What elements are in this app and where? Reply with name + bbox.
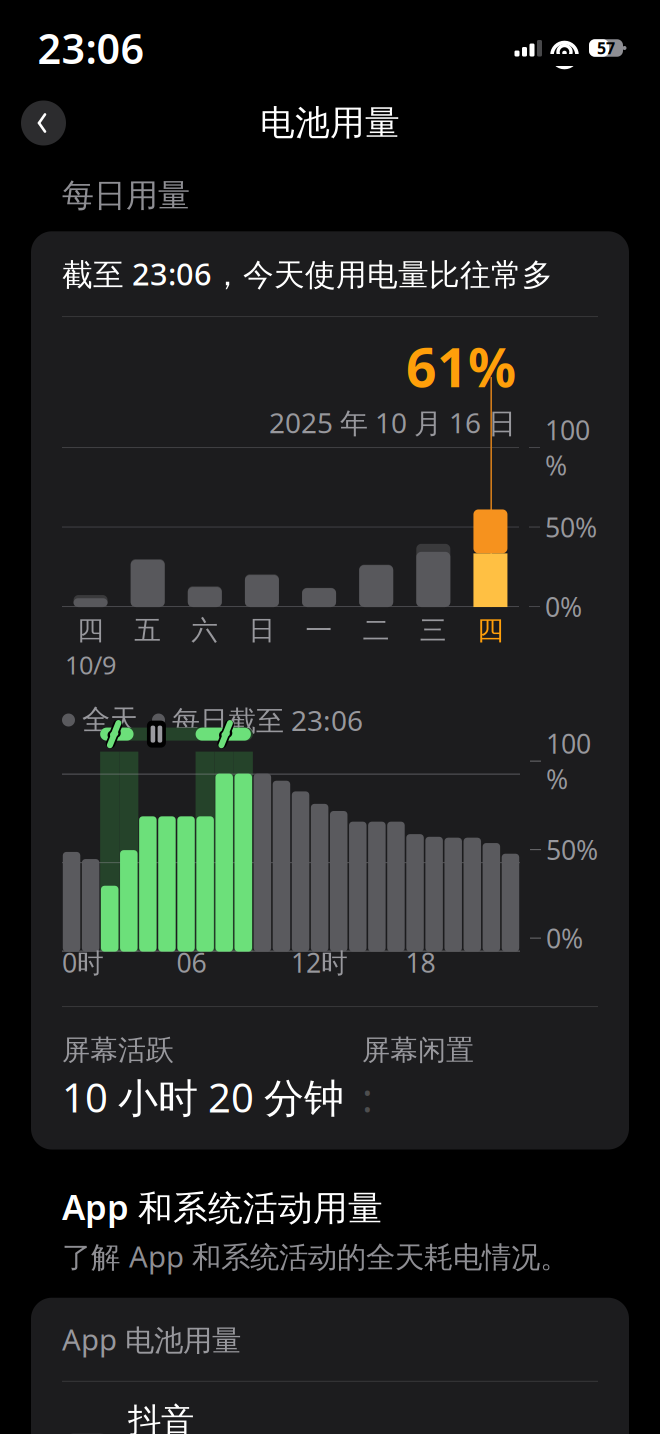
staticText: App 和系统活动用量 xyxy=(62,1183,383,1230)
staticText: 23:06 xyxy=(37,21,144,75)
staticText: 12时 xyxy=(291,945,348,980)
staticText: 100% xyxy=(545,412,590,483)
staticText: 每日用量 xyxy=(62,176,190,215)
staticText: : xyxy=(362,1070,373,1123)
staticText: 06 xyxy=(176,945,206,980)
staticText: 屏幕闲置 xyxy=(362,1033,474,1067)
staticText: 五 xyxy=(134,614,161,647)
staticText: 屏幕活跃 xyxy=(62,1033,174,1067)
staticText: 0% xyxy=(545,589,582,624)
staticText: 10/9 xyxy=(65,648,116,681)
staticText: 10 小时 20 分钟 xyxy=(62,1070,344,1123)
button[interactable]: 抖音 xyxy=(62,1382,598,1434)
staticText: 50% xyxy=(545,509,597,545)
staticText: 日 xyxy=(248,614,275,647)
staticText: 了解 App 和系统活动的全天耗电情况。 xyxy=(62,1237,569,1276)
staticText: 57 xyxy=(597,37,615,59)
staticText: 0时 xyxy=(62,945,104,980)
staticText: 2025 年 10 月 16 日 xyxy=(269,404,516,441)
staticText: 三 xyxy=(420,614,447,647)
staticText: 四 xyxy=(477,614,504,647)
staticText: 0% xyxy=(546,920,583,956)
staticText: 每日截至 23:06 xyxy=(172,701,363,739)
staticText: 六 xyxy=(191,614,218,647)
staticText: 61% xyxy=(406,331,516,402)
staticText: 全天 xyxy=(82,703,138,737)
staticText: 50% xyxy=(546,832,598,867)
staticText: App 电池用量 xyxy=(62,1320,241,1359)
staticText: 抖音 xyxy=(128,1400,194,1434)
staticText: 100% xyxy=(546,726,591,796)
staticText: 18 xyxy=(405,945,435,980)
staticText: 电池用量 xyxy=(260,102,400,144)
button[interactable]: 返回 xyxy=(21,100,66,145)
staticText: 四 xyxy=(77,614,104,647)
staticText: 二 xyxy=(363,614,390,647)
staticText: 一 xyxy=(306,614,333,647)
staticText: 截至 23:06，今天使用电量比往常多 xyxy=(62,253,553,294)
